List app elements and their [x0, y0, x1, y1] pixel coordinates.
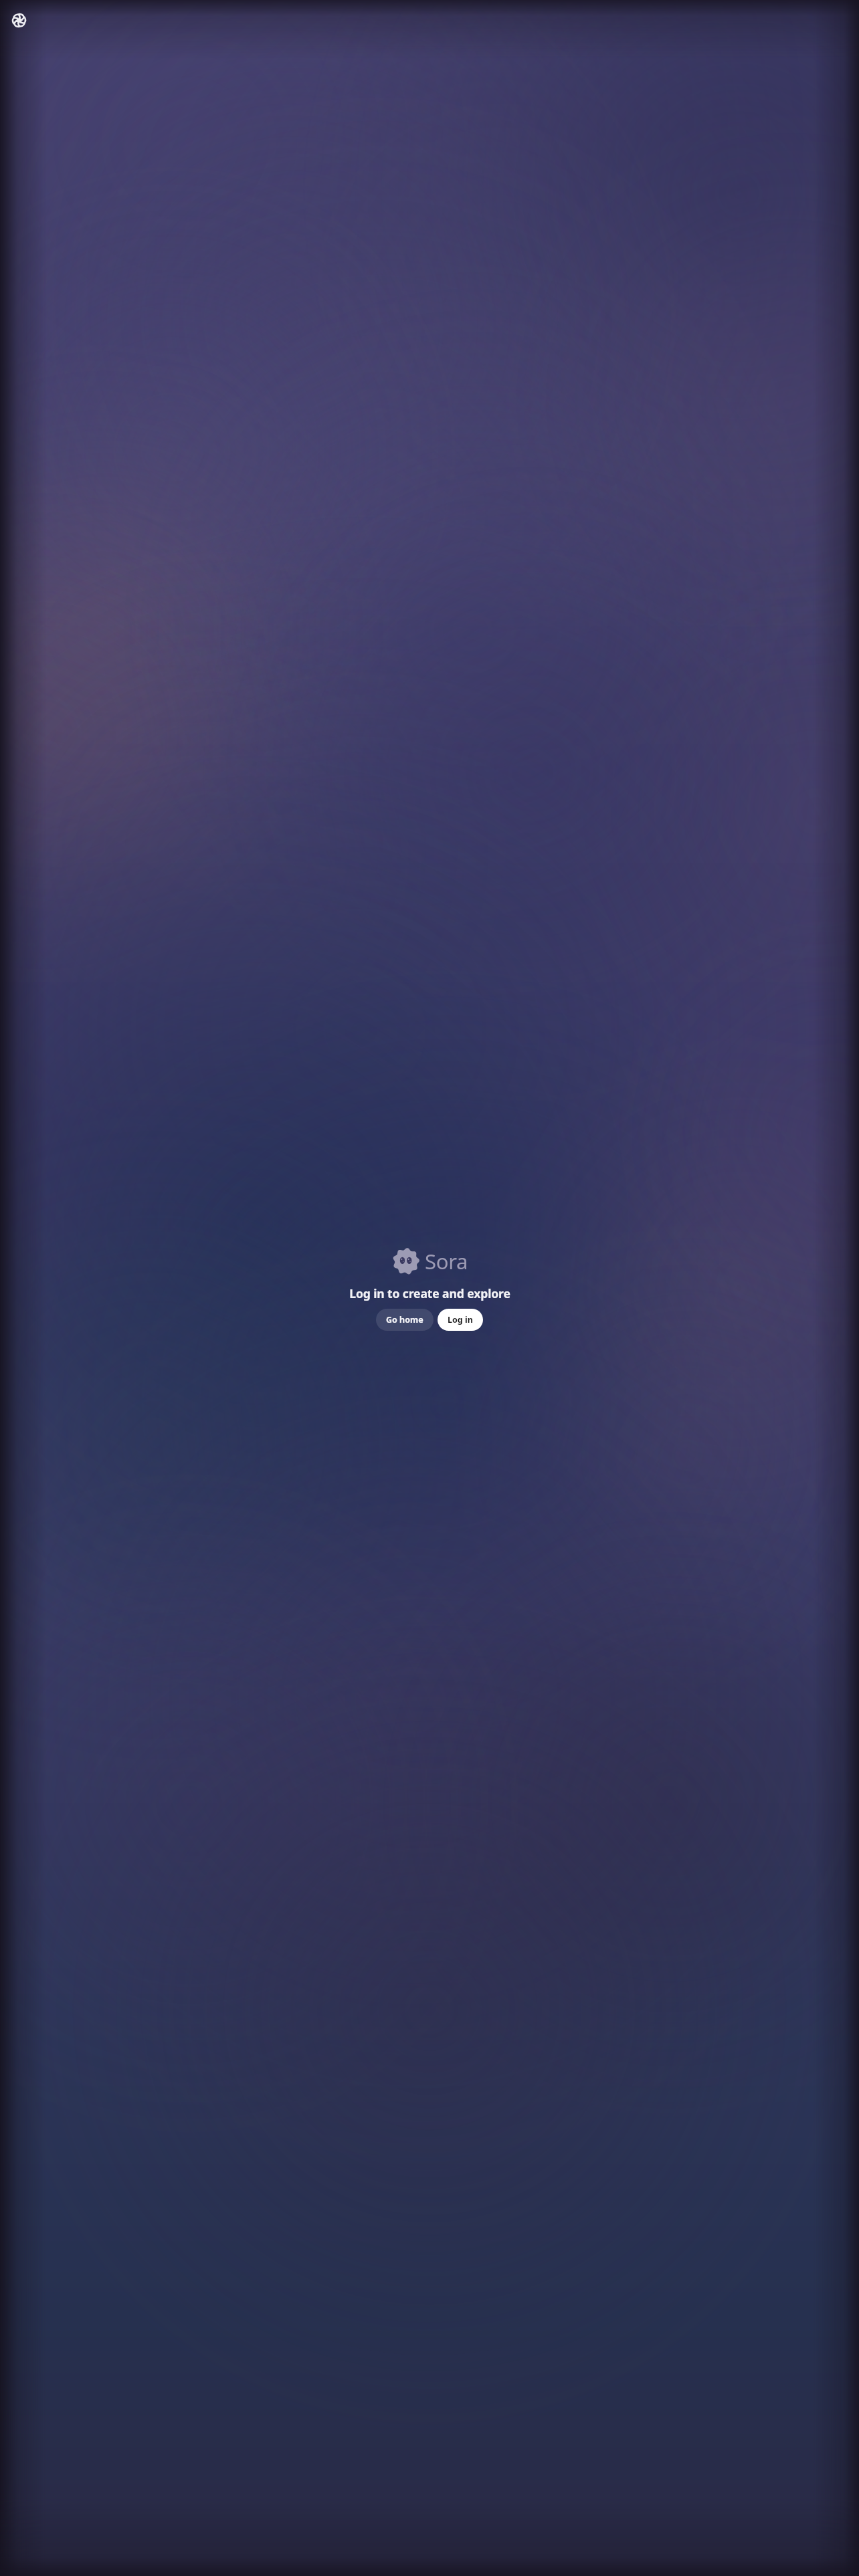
button[interactable]: Go home — [376, 1309, 434, 1331]
staticText: Log in to create and explore — [349, 1285, 510, 1301]
staticText: Sora — [425, 1247, 468, 1275]
button[interactable]: Log in — [438, 1309, 483, 1331]
button[interactable]: OpenAI — [9, 11, 28, 29]
staticText: Go home — [386, 1314, 423, 1325]
staticText: Log in — [448, 1314, 473, 1325]
